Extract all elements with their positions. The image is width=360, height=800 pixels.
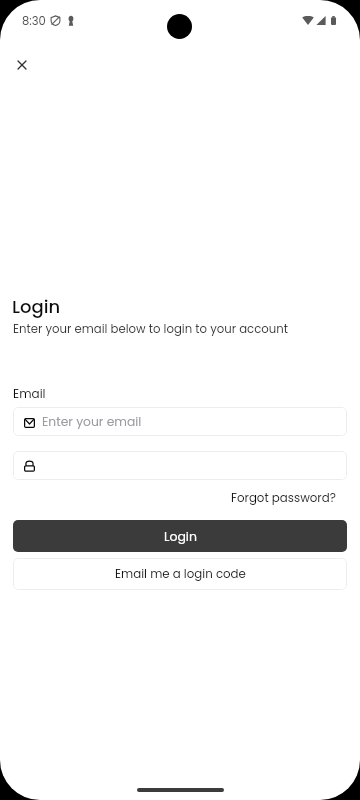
button[interactable]: Close xyxy=(6,49,38,81)
staticText: Email me a login code xyxy=(115,566,246,583)
staticText: Login xyxy=(164,528,197,545)
staticText: 8:30 xyxy=(22,13,46,29)
staticText: Enter your email below to login to your … xyxy=(13,321,288,337)
staticText: Login xyxy=(12,294,61,319)
button[interactable]: Email me a login code xyxy=(13,558,347,590)
staticText: Email xyxy=(13,385,46,402)
button[interactable]: Login xyxy=(13,520,347,552)
staticText: Forgot password? xyxy=(231,490,336,507)
button[interactable]: Forgot password? xyxy=(231,490,336,507)
staticText: Enter your email xyxy=(42,413,142,430)
button[interactable]: Enter your email xyxy=(13,407,347,436)
button[interactable] xyxy=(13,451,347,480)
